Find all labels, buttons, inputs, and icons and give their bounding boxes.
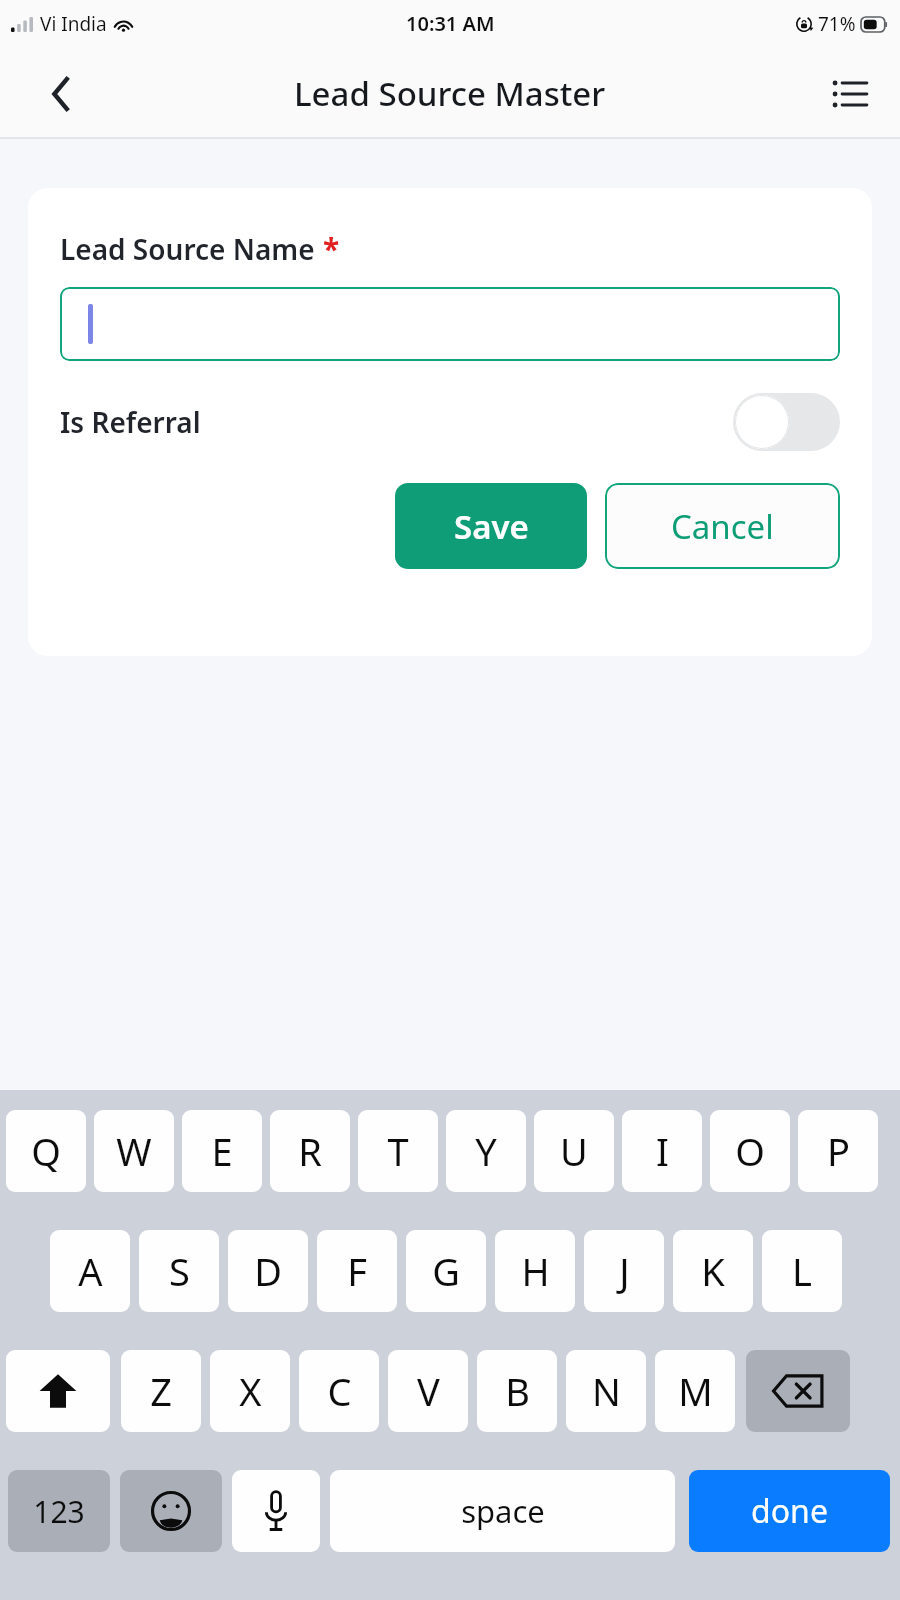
button[interactable]: Q xyxy=(6,1110,86,1192)
staticText: K xyxy=(701,1245,725,1297)
button[interactable]: O xyxy=(710,1110,790,1192)
staticText: P xyxy=(827,1125,850,1177)
button[interactable] xyxy=(60,287,840,361)
button[interactable]: D xyxy=(228,1230,308,1312)
button[interactable]: U xyxy=(534,1110,614,1192)
button[interactable]: Back xyxy=(36,68,88,120)
button[interactable]: J xyxy=(584,1230,664,1312)
staticText: D xyxy=(254,1245,282,1297)
button[interactable]: S xyxy=(139,1230,219,1312)
button[interactable]: Shift xyxy=(6,1350,110,1432)
staticText: 123 xyxy=(33,1491,85,1532)
staticText: W xyxy=(116,1125,152,1177)
staticText: V xyxy=(417,1365,440,1417)
staticText: I xyxy=(656,1125,669,1177)
button[interactable]: Z xyxy=(121,1350,201,1432)
button[interactable]: P xyxy=(798,1110,878,1192)
button[interactable]: Backspace xyxy=(746,1350,850,1432)
staticText: Y xyxy=(475,1125,497,1177)
staticText: Is Referral xyxy=(60,403,201,441)
staticText: X xyxy=(239,1365,262,1417)
staticText: Z xyxy=(150,1365,172,1417)
button[interactable]: R xyxy=(270,1110,350,1192)
button[interactable]: Emoji xyxy=(120,1470,222,1552)
button[interactable]: M xyxy=(655,1350,735,1432)
staticText: E xyxy=(211,1125,233,1177)
button[interactable]: L xyxy=(762,1230,842,1312)
button[interactable]: G xyxy=(406,1230,486,1312)
button[interactable]: Menu xyxy=(822,66,878,122)
staticText: L xyxy=(792,1245,812,1297)
button[interactable]: Y xyxy=(446,1110,526,1192)
staticText: B xyxy=(505,1365,530,1417)
staticText: 10:31 AM xyxy=(406,10,495,37)
staticText: A xyxy=(78,1245,103,1297)
staticText: Lead Source Master xyxy=(294,71,606,116)
staticText: * xyxy=(323,228,340,269)
staticText: M xyxy=(678,1365,713,1417)
staticText: Save xyxy=(454,504,529,549)
button[interactable]: F xyxy=(317,1230,397,1312)
button[interactable]: X xyxy=(210,1350,290,1432)
button[interactable]: V xyxy=(388,1350,468,1432)
staticText: Q xyxy=(31,1125,61,1177)
staticText: N xyxy=(592,1365,621,1417)
button[interactable]: A xyxy=(50,1230,130,1312)
button[interactable]: C xyxy=(299,1350,379,1432)
button[interactable]: done xyxy=(689,1470,890,1552)
staticText: U xyxy=(560,1125,588,1177)
staticText: 71% xyxy=(818,11,856,37)
button[interactable]: K xyxy=(673,1230,753,1312)
button[interactable]: 123 xyxy=(8,1470,110,1552)
button[interactable]: W xyxy=(94,1110,174,1192)
staticText: done xyxy=(751,1489,828,1533)
button[interactable]: Dictate xyxy=(232,1470,320,1552)
button[interactable]: Save xyxy=(395,483,587,569)
button[interactable]: Is Referral toggle xyxy=(733,393,840,451)
staticText: Lead Source Name xyxy=(60,230,315,268)
button[interactable]: I xyxy=(622,1110,702,1192)
button[interactable]: H xyxy=(495,1230,575,1312)
button[interactable]: N xyxy=(566,1350,646,1432)
staticText: T xyxy=(387,1125,409,1177)
staticText: O xyxy=(735,1125,765,1177)
staticText: G xyxy=(432,1245,460,1297)
staticText: C xyxy=(327,1365,352,1417)
staticText: Vi India xyxy=(40,11,107,37)
button[interactable]: space xyxy=(330,1470,675,1552)
staticText: H xyxy=(521,1245,550,1297)
staticText: Cancel xyxy=(671,504,774,549)
button[interactable]: B xyxy=(477,1350,557,1432)
button[interactable]: T xyxy=(358,1110,438,1192)
button[interactable]: E xyxy=(182,1110,262,1192)
staticText: space xyxy=(461,1490,545,1532)
staticText: J xyxy=(619,1245,630,1297)
staticText: S xyxy=(169,1245,190,1297)
staticText: R xyxy=(298,1125,322,1177)
staticText: F xyxy=(347,1245,367,1297)
button[interactable]: Cancel xyxy=(605,483,840,569)
